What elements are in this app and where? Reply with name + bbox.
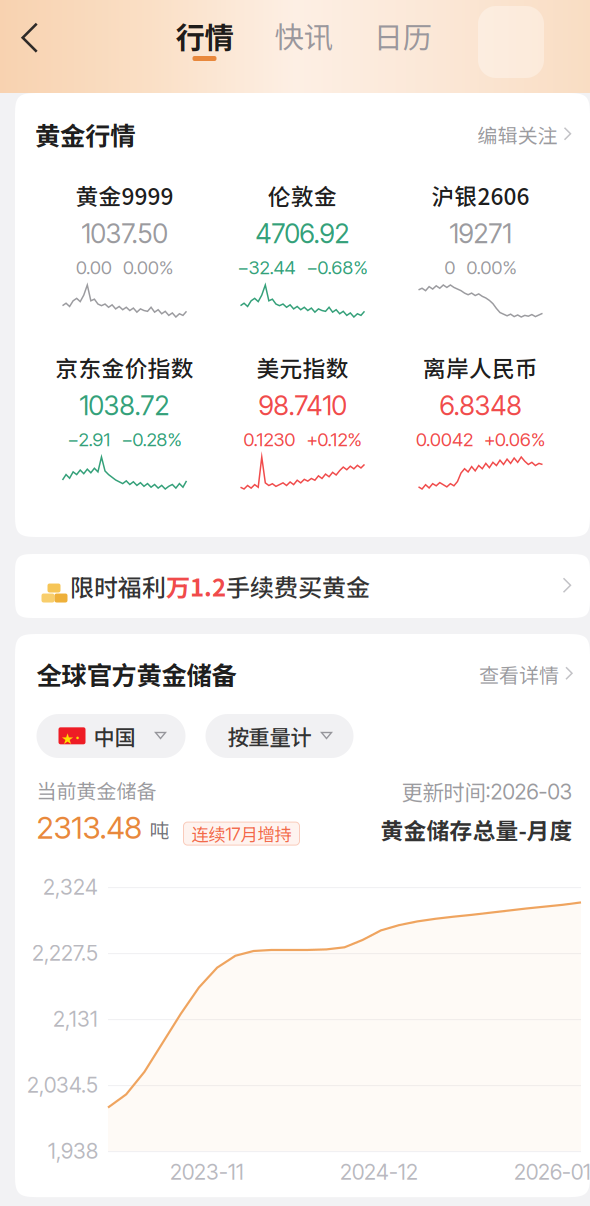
staticText: 黄金储存总量-月度	[380, 813, 572, 846]
staticText: 限时福利	[70, 569, 166, 603]
staticText: 按重量计	[227, 721, 311, 751]
staticText: 快讯	[274, 14, 332, 57]
button[interactable]: 日历	[363, 0, 442, 93]
button[interactable]: 美元指数	[213, 348, 391, 489]
staticText: −32.44	[237, 256, 295, 279]
staticText: +0.12%	[306, 428, 361, 451]
staticText: 1,938	[48, 1138, 98, 1164]
staticText: −0.68%	[306, 256, 367, 279]
button[interactable]: 黄金9999	[35, 176, 213, 317]
staticText: 6.8348	[439, 389, 521, 422]
staticText: 1037.50	[81, 217, 167, 250]
button[interactable]: 查看详情	[479, 659, 573, 688]
staticText: 全球官方黄金储备	[36, 656, 236, 692]
staticText: 2,131	[53, 1006, 98, 1032]
staticText: 0.00%	[466, 256, 516, 279]
staticText: 4706.92	[255, 217, 349, 250]
staticText: −2.91	[67, 428, 110, 451]
staticText: ·	[71, 728, 83, 746]
staticText: 更新时间:2026-03	[401, 776, 572, 806]
staticText: 2026-01	[514, 1159, 590, 1185]
staticText: 吨	[149, 815, 169, 844]
staticText: 2,034.5	[27, 1072, 98, 1098]
staticText: 黄金9999	[75, 179, 173, 211]
staticText: 伦敦金	[268, 179, 337, 211]
staticText: 2313.48	[36, 809, 141, 846]
staticText: 连续17月增持	[191, 821, 291, 846]
staticText: 万1.2	[166, 569, 226, 603]
button[interactable]: Back	[7, 10, 55, 68]
staticText: 19271	[449, 217, 511, 250]
staticText: 2023-11	[170, 1159, 244, 1185]
staticText: 2,227.5	[32, 940, 98, 966]
staticText: 2,324	[43, 874, 98, 900]
button[interactable]: ★	[36, 714, 185, 758]
staticText: 日历	[373, 14, 431, 57]
staticText: 当前黄金储备	[36, 775, 156, 804]
staticText: 中国	[93, 721, 135, 751]
staticText: 手续费买黄金	[226, 569, 370, 603]
staticText: 0	[444, 256, 455, 279]
staticText: 0.00%	[123, 256, 173, 279]
button[interactable]: 沪银2606	[391, 176, 569, 317]
staticText: 1038.72	[79, 389, 169, 422]
button[interactable]: 京东金价指数	[35, 348, 213, 489]
staticText: 0.1230	[243, 428, 295, 451]
staticText: 沪银2606	[431, 179, 529, 211]
button[interactable]: 快讯	[264, 0, 343, 93]
staticText: 离岸人民币	[423, 351, 538, 383]
staticText: 2024-12	[340, 1159, 418, 1185]
button[interactable]: 按重量计	[205, 714, 353, 758]
staticText: 98.7410	[258, 389, 346, 422]
staticText: 0.00	[76, 256, 112, 279]
staticText: +0.06%	[484, 428, 545, 451]
button[interactable]: 离岸人民币	[391, 348, 569, 489]
staticText: −0.28%	[121, 428, 181, 451]
button[interactable]: 行情	[165, 0, 244, 93]
button[interactable]: 编辑关注	[477, 120, 572, 149]
button[interactable]: 伦敦金	[213, 176, 391, 317]
staticText: 编辑关注	[477, 120, 557, 149]
staticText: 美元指数	[256, 351, 348, 383]
staticText: ★	[61, 729, 73, 747]
staticText: 行情	[175, 14, 233, 57]
staticText: 0.0042	[416, 428, 473, 451]
button[interactable]: 限时福利	[0, 554, 590, 618]
staticText: 京东金价指数	[55, 351, 193, 383]
staticText: 查看详情	[479, 659, 559, 688]
staticText: 黄金行情	[35, 116, 135, 153]
